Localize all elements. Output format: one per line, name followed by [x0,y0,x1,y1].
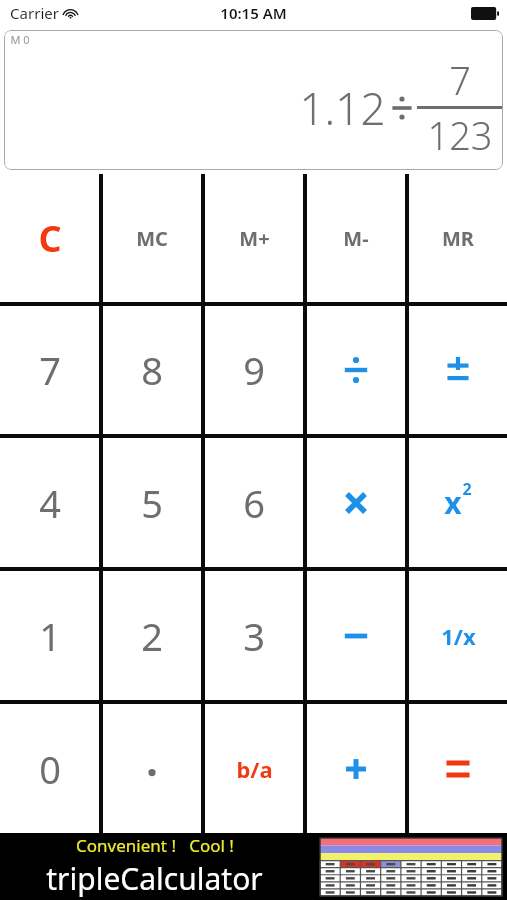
staticText: 7 [39,344,61,396]
staticText: 1.12 [299,78,386,138]
staticText: 1 [39,610,61,662]
staticText: MR [442,225,474,252]
button[interactable]: 1/x [409,571,507,700]
staticText: M+ [239,225,270,252]
button[interactable]: 9 [205,306,303,434]
button[interactable]: MR [409,174,507,302]
staticText: 5 [141,477,163,529]
staticText: 6 [243,477,265,529]
button[interactable]: MC [103,174,201,302]
staticText: 1/x [441,621,476,651]
button[interactable]: 1 [0,571,99,700]
staticText: 10:15 AM [220,3,287,23]
button[interactable]: 0 [0,704,99,833]
button[interactable]: 5 [103,438,201,567]
staticText: 4 [39,477,61,529]
button[interactable]: + [307,704,405,833]
button[interactable]: C [0,174,99,302]
staticText: M 0 [10,32,30,47]
button[interactable]: 8 [103,306,201,434]
staticText: 8 [141,344,163,396]
staticText: Carrier [10,3,59,23]
button[interactable]: 6 [205,438,303,567]
staticText: Convenient ! Cool ! [76,834,234,857]
button[interactable]: M+ [205,174,303,302]
button[interactable]: x² [409,438,507,567]
button[interactable]: ÷ [307,306,405,434]
button[interactable]: 3 [205,571,303,700]
staticText: MC [136,225,168,252]
staticText: C [38,214,62,263]
staticText: 2 [141,610,163,662]
button[interactable]: − [307,571,405,700]
button[interactable]: = [409,704,507,833]
button[interactable]: 4 [0,438,99,567]
button[interactable]: × [307,438,405,567]
staticText: b/a [236,754,273,784]
button[interactable]: Convenient ! Cool ! [0,833,507,900]
button[interactable]: 7 [0,306,99,434]
button[interactable]: M- [307,174,405,302]
staticText: 7 [449,54,471,106]
button[interactable]: b/a [205,704,303,833]
staticText: 9 [243,344,265,396]
staticText: 123 [427,109,493,161]
staticText: tripleCalculator [46,858,263,899]
staticText: 0 [39,743,61,795]
staticText: x [444,482,462,523]
staticText: M- [343,225,369,252]
button[interactable]: ± [409,306,507,434]
staticText: 2 [462,478,472,500]
staticText: 3 [243,610,265,662]
button[interactable]: 2 [103,571,201,700]
button[interactable]: . [103,704,201,833]
